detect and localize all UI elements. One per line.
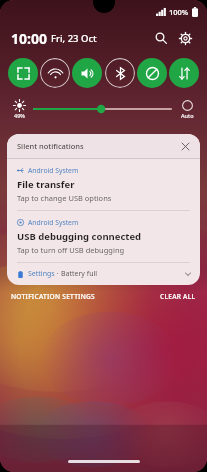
staticText: USB debugging connected: [17, 230, 142, 243]
button[interactable]: Android System: [7, 211, 200, 262]
button[interactable]: Do not disturb: [137, 58, 167, 88]
staticText: ·: [55, 269, 61, 279]
staticText: Tap to turn off USB debugging: [17, 245, 125, 255]
button[interactable]: Settings: [7, 263, 200, 285]
button[interactable]: [34, 99, 171, 119]
staticText: Android System: [28, 166, 79, 175]
button[interactable]: Android System: [7, 159, 200, 210]
button[interactable]: Mobile data: [169, 58, 199, 88]
button[interactable]: CLEAR ALL: [160, 289, 196, 304]
button[interactable]: Settings: [174, 27, 196, 49]
staticText: Auto: [181, 112, 194, 119]
button[interactable]: Scan: [8, 58, 38, 88]
staticText: Settings: [28, 269, 55, 279]
staticText: 10:00: [11, 29, 47, 48]
staticText: 100%: [169, 7, 189, 17]
staticText: File transfer: [17, 178, 75, 191]
staticText: CLEAR ALL: [160, 292, 196, 301]
button[interactable]: Sound: [72, 58, 102, 88]
button[interactable]: Dismiss silent notifications: [178, 139, 192, 153]
staticText: Silent notifications: [17, 141, 84, 151]
button[interactable]: Auto brightness: [175, 100, 199, 119]
button[interactable]: Search: [150, 27, 172, 49]
button[interactable]: Wi-Fi: [40, 58, 70, 88]
button[interactable]: Bluetooth: [105, 58, 135, 88]
staticText: Android System: [28, 218, 79, 227]
staticText: NOTIFICATION SETTINGS: [11, 292, 95, 301]
staticText: 49%: [14, 112, 25, 119]
staticText: Fri, 23 Oct: [51, 32, 97, 45]
staticText: Tap to change USB options: [17, 193, 112, 203]
button[interactable]: NOTIFICATION SETTINGS: [11, 289, 95, 304]
staticText: Battery full: [61, 269, 98, 279]
